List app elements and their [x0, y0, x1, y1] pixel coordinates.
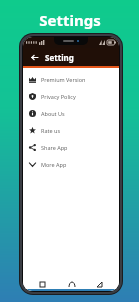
button[interactable]: About Us — [23, 105, 119, 122]
staticText: About Us — [41, 110, 65, 117]
staticText: Privacy Policy — [41, 93, 76, 100]
button[interactable]: Premium Version — [23, 71, 119, 88]
button[interactable]: Back — [28, 51, 40, 63]
button[interactable]: Back — [94, 279, 105, 290]
button[interactable]: Share App — [23, 139, 119, 156]
staticText: Settings — [39, 10, 101, 30]
staticText: Rate us — [41, 127, 61, 134]
staticText: Premium Version — [41, 76, 86, 83]
button[interactable]: More App — [23, 156, 119, 173]
button[interactable]: Home — [66, 279, 77, 290]
button[interactable]: Privacy Policy — [23, 88, 119, 105]
staticText: More App — [41, 161, 67, 168]
button[interactable]: Recents — [37, 279, 48, 290]
staticText: Share App — [41, 144, 68, 151]
button[interactable]: Rate us — [23, 122, 119, 139]
staticText: Setting — [45, 52, 74, 63]
